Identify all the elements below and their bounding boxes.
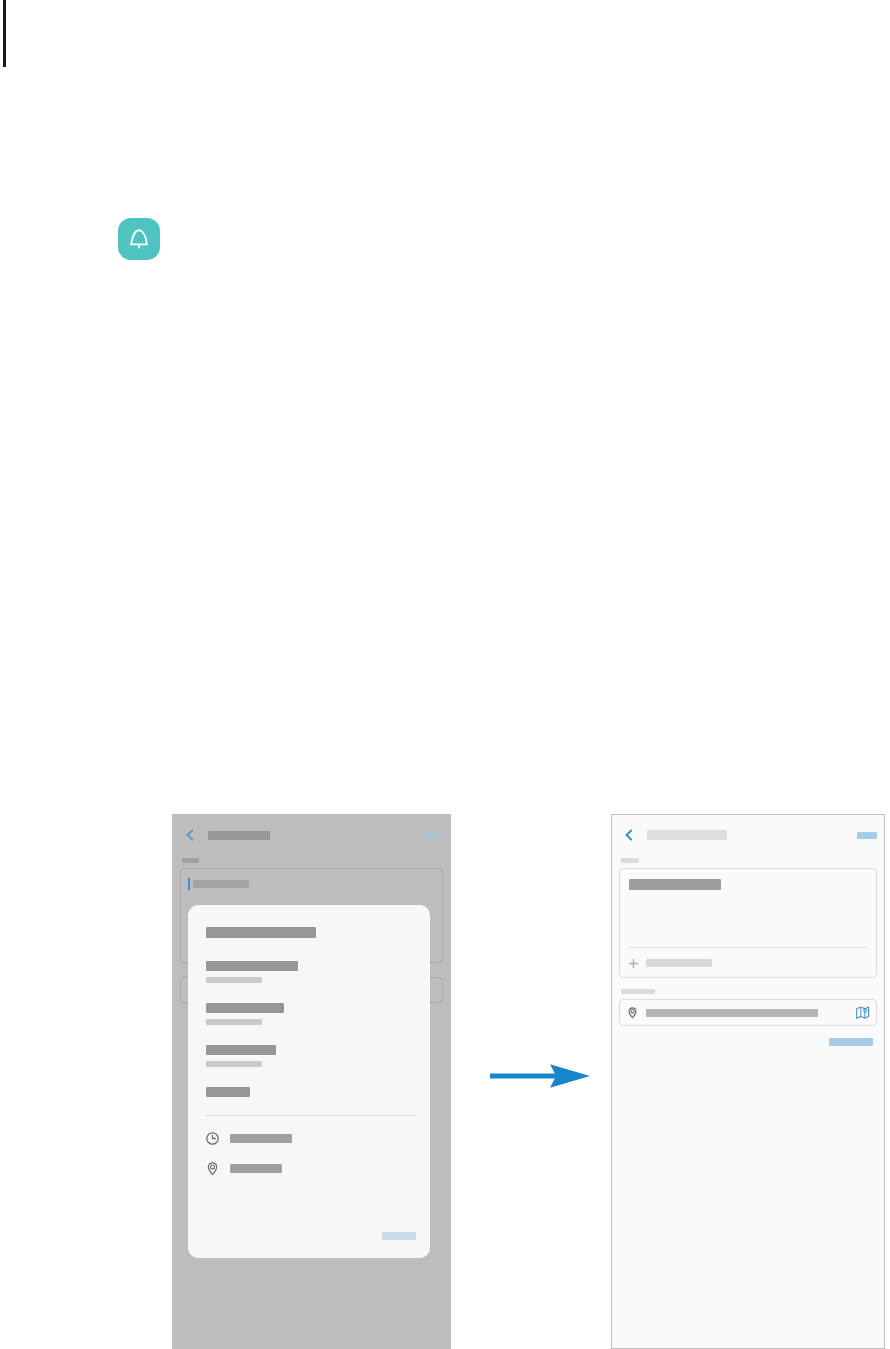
button[interactable] — [857, 832, 877, 839]
button[interactable]: Open map — [627, 999, 869, 1026]
button[interactable]: Back — [619, 825, 639, 845]
button[interactable]: Reminder app icon — [118, 218, 160, 260]
button[interactable] — [206, 1132, 416, 1145]
button[interactable]: Open map — [856, 1006, 869, 1019]
button[interactable] — [206, 961, 416, 983]
button[interactable] — [206, 1003, 416, 1025]
button[interactable]: Back — [180, 825, 200, 845]
button[interactable] — [619, 868, 877, 978]
button[interactable] — [206, 1045, 416, 1067]
button[interactable] — [206, 1087, 416, 1097]
button[interactable] — [180, 977, 443, 1003]
button[interactable] — [180, 868, 443, 963]
button[interactable] — [206, 1162, 416, 1175]
